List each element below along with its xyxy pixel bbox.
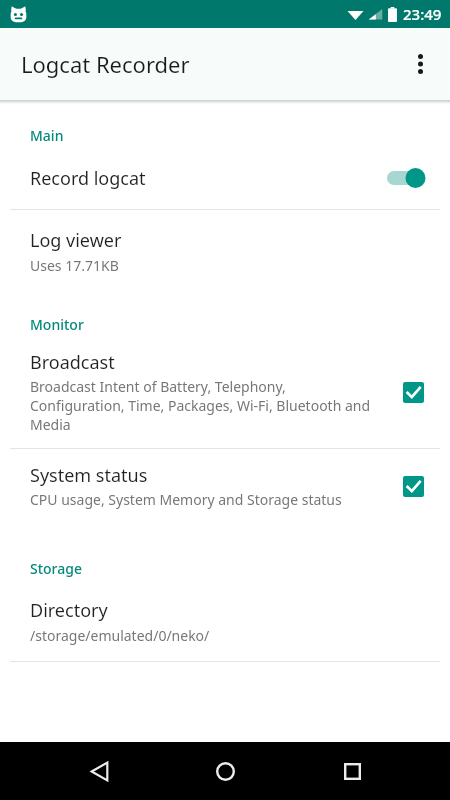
button[interactable]: Enabled checkbox: [396, 375, 430, 409]
staticText: Uses 17.71KB: [30, 256, 119, 275]
staticText: Log viewer: [30, 228, 122, 253]
button[interactable]: Recent apps: [324, 743, 380, 799]
button[interactable]: Directory: [0, 582, 450, 661]
staticText: Main: [30, 126, 64, 145]
staticText: Broadcast: [30, 350, 115, 375]
staticText: 23:49: [403, 4, 442, 24]
staticText: Directory: [30, 598, 108, 623]
button[interactable]: Record logcat toggle: [378, 161, 430, 195]
staticText: Monitor: [30, 315, 84, 334]
staticText: Logcat Recorder: [21, 49, 190, 79]
button[interactable]: More options: [398, 42, 442, 86]
button[interactable]: Record logcat: [0, 149, 450, 209]
staticText: Record logcat: [30, 166, 378, 191]
button[interactable]: System status: [0, 449, 450, 523]
staticText: Broadcast Intent of Battery, Telephony, …: [30, 377, 380, 434]
staticText: /storage/emulated/0/neko/: [30, 626, 210, 645]
staticText: Storage: [30, 559, 82, 578]
button[interactable]: Home: [197, 743, 253, 799]
staticText: CPU usage, System Memory and Storage sta…: [30, 490, 342, 509]
button[interactable]: Enabled checkbox: [396, 469, 430, 503]
button[interactable]: Log viewer: [0, 210, 450, 293]
button[interactable]: Back: [71, 743, 127, 799]
button[interactable]: Broadcast: [0, 338, 450, 448]
staticText: System status: [30, 463, 148, 488]
